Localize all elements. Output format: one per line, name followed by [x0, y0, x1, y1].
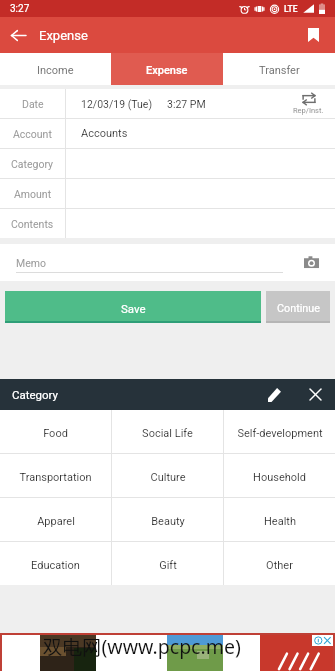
staticText: Amount: [14, 188, 52, 200]
staticText: Expense: [146, 64, 188, 77]
button[interactable]: Close: [300, 379, 331, 410]
button[interactable]: Ad choices: [312, 635, 333, 646]
button[interactable]: Memo: [0, 244, 296, 281]
button[interactable]: Culture: [112, 454, 223, 497]
staticText: Category: [11, 158, 54, 170]
staticText: 3:27 PM: [167, 98, 206, 110]
button[interactable]: Ad choices: [0, 633, 335, 671]
button[interactable]: Edit: [259, 379, 290, 410]
staticText: 12/03/19 (Tue): [81, 98, 153, 110]
staticText: Gift: [159, 559, 177, 572]
button[interactable]: Health: [224, 498, 335, 541]
staticText: Apparel: [37, 515, 75, 528]
staticText: Expense: [39, 28, 88, 43]
button[interactable]: Transportation: [0, 454, 111, 497]
button[interactable]: Other: [224, 542, 335, 585]
staticText: Other: [266, 559, 293, 572]
staticText: Date: [22, 98, 44, 110]
staticText: Social Life: [142, 427, 193, 440]
staticText: Transportation: [19, 471, 92, 484]
staticText: Health: [264, 515, 296, 528]
staticText: Contents: [11, 218, 54, 230]
button[interactable]: Education: [0, 542, 111, 585]
button[interactable]: Bookmark: [295, 17, 331, 53]
staticText: Food: [43, 427, 68, 440]
button[interactable]: Self-development: [224, 410, 335, 453]
button[interactable]: Income: [0, 53, 111, 85]
button[interactable]: Camera: [296, 248, 326, 278]
button[interactable]: Gift: [112, 542, 223, 585]
button[interactable]: Social Life: [112, 410, 223, 453]
button[interactable]: Food: [0, 410, 111, 453]
button[interactable]: Beauty: [112, 498, 223, 541]
staticText: Income: [37, 64, 74, 77]
button[interactable]: Save: [5, 291, 261, 323]
staticText: Save: [121, 302, 146, 315]
staticText: Beauty: [151, 515, 185, 528]
staticText: Culture: [150, 471, 186, 484]
staticText: Accounts: [81, 127, 128, 140]
staticText: Memo: [16, 257, 46, 269]
staticText: LTE: [284, 4, 298, 14]
staticText: Household: [253, 471, 306, 484]
button[interactable]: Back: [0, 17, 36, 53]
staticText: 3:27: [10, 3, 30, 15]
staticText: Rep/Inst.: [293, 106, 324, 115]
button[interactable]: Household: [224, 454, 335, 497]
button[interactable]: Transfer: [223, 53, 335, 85]
button[interactable]: Rep/Inst.: [293, 93, 324, 115]
staticText: Self-development: [237, 427, 323, 440]
button[interactable]: Continue: [266, 291, 330, 323]
staticText: Education: [31, 559, 80, 572]
staticText: Continue: [277, 302, 320, 315]
staticText: Category: [12, 388, 59, 401]
staticText: 双电网(www.pcpc.me): [43, 633, 241, 660]
staticText: Account: [13, 128, 52, 140]
staticText: Transfer: [259, 64, 300, 77]
button[interactable]: Apparel: [0, 498, 111, 541]
button[interactable]: Expense: [111, 53, 223, 85]
